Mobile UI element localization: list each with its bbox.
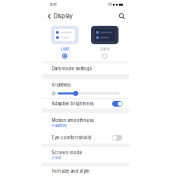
staticText: Motion smoothness (51, 118, 93, 123)
staticText: Adaptive (51, 123, 66, 128)
button[interactable]: Dark (91, 23, 118, 61)
staticText: Eye comfort shield (51, 135, 91, 140)
button[interactable]: Motion smoothness (42, 113, 129, 132)
staticText: Screen mode (51, 150, 82, 155)
button[interactable]: Search (117, 9, 127, 23)
staticText: Vivid (51, 156, 60, 160)
button[interactable]: Eye comfort shield (42, 132, 129, 143)
staticText: 9:41 (50, 3, 56, 7)
staticText: Dark (100, 46, 109, 51)
staticText: Display (53, 13, 72, 20)
button[interactable]: Font size and style (42, 166, 129, 176)
staticText: Font size and style (51, 169, 89, 174)
button[interactable]: Adaptive brightness (42, 99, 129, 108)
staticText: Adaptive brightness (51, 101, 93, 106)
button[interactable]: Dark mode settings (42, 63, 129, 74)
button[interactable]: Back (46, 9, 73, 23)
staticText: Dark mode settings (51, 66, 91, 71)
button[interactable]: Screen mode (42, 147, 129, 163)
staticText: Brightness (51, 82, 70, 87)
staticText: 4G (108, 3, 112, 7)
button[interactable]: Light (51, 23, 78, 61)
staticText: Light (61, 46, 69, 51)
